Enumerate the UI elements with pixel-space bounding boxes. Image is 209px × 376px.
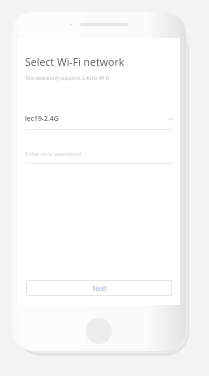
staticText: Enter your password xyxy=(25,150,82,158)
button[interactable]: Next xyxy=(26,280,172,296)
button[interactable]: lec19-2.4G xyxy=(25,114,173,130)
staticText: lec19-2.4G xyxy=(25,114,59,123)
other: Choose network xyxy=(168,117,173,121)
button[interactable]: Enter your password xyxy=(25,150,173,164)
button[interactable]: Home xyxy=(86,318,112,344)
staticText: Next xyxy=(92,284,107,293)
staticText: Select Wi-Fi network xyxy=(25,55,125,69)
staticText: This device only supports 2.4GHz Wi-Fi xyxy=(25,75,110,81)
